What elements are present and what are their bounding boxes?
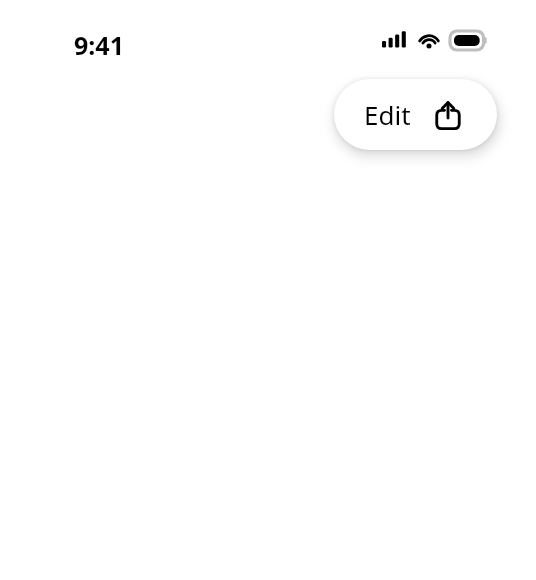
staticText: Edit <box>364 97 411 132</box>
button[interactable]: Edit <box>334 79 497 150</box>
staticText: 9:41 <box>74 28 124 62</box>
other: Share <box>431 98 465 132</box>
